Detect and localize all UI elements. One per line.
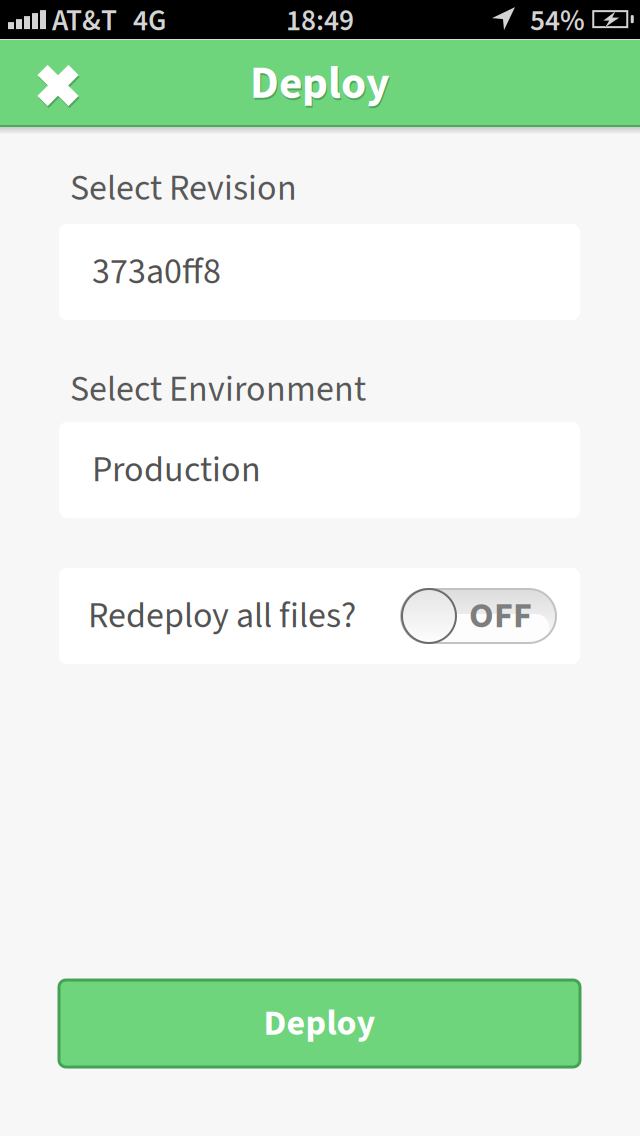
staticText: OFF	[469, 590, 532, 642]
staticText: 373a0ff8	[92, 246, 221, 298]
staticText: Select Revision	[70, 163, 297, 214]
staticText: Redeploy all files?	[88, 590, 356, 642]
button[interactable]: Redeploy all files?	[59, 568, 580, 664]
button[interactable]: Close	[0, 41, 116, 125]
staticText: 4G	[133, 0, 166, 42]
staticText: Deploy	[263, 998, 375, 1049]
staticText: Select Environment	[70, 364, 366, 415]
staticText: AT&T	[52, 0, 117, 42]
staticText: Production	[92, 444, 261, 496]
staticText: 18:49	[286, 0, 354, 42]
button[interactable]: 373a0ff8	[59, 224, 580, 320]
button[interactable]: Deploy	[59, 980, 580, 1067]
staticText: 54%	[530, 0, 585, 42]
staticText: Deploy	[250, 51, 390, 116]
staticText: Deploy	[251, 53, 391, 118]
button[interactable]: Production	[59, 422, 580, 518]
